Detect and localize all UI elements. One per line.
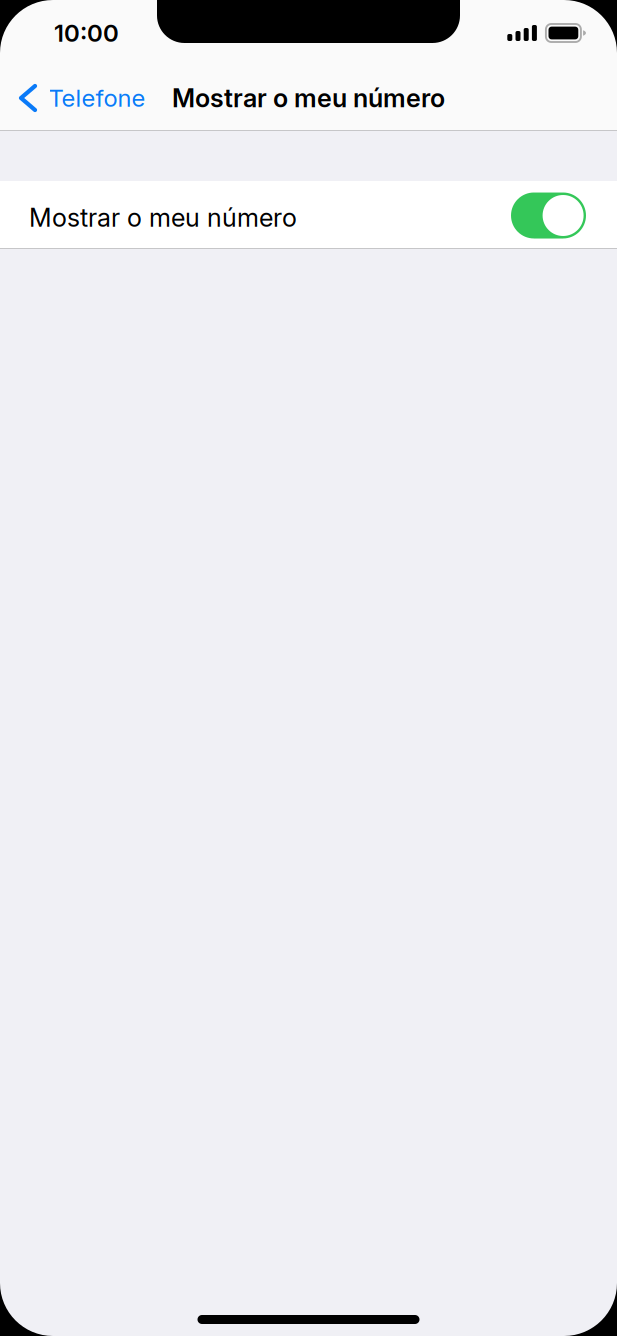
staticText: Telefone <box>48 83 145 112</box>
staticText: Mostrar o meu número <box>172 83 445 113</box>
staticText: 10:00 <box>54 18 119 47</box>
button[interactable]: Telefone <box>0 77 159 119</box>
button[interactable]: Mostrar o meu número <box>0 181 617 248</box>
staticText: Mostrar o meu número <box>29 202 297 233</box>
